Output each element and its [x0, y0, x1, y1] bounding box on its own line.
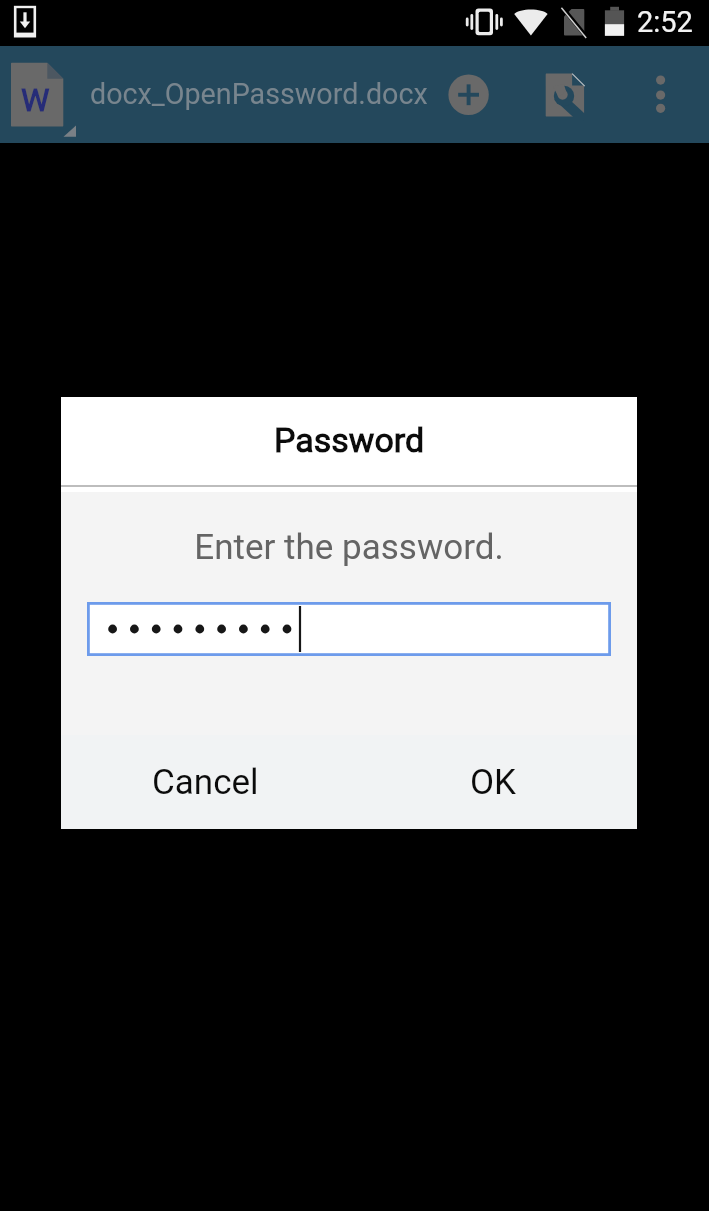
button[interactable]: Cancel — [61, 735, 349, 829]
button[interactable]: Add — [437, 46, 501, 143]
staticText: Cancel — [152, 762, 259, 803]
button[interactable]: Password field — [87, 602, 611, 656]
staticText: Password — [274, 420, 425, 460]
staticText: W — [21, 81, 50, 119]
staticText: 2:52 — [637, 5, 693, 39]
button[interactable]: Open document — [0, 46, 84, 143]
button[interactable]: OK — [349, 735, 637, 829]
staticText: OK — [470, 762, 517, 803]
staticText: docx_OpenPassword.docx — [90, 77, 428, 111]
button[interactable]: More options — [633, 46, 688, 143]
staticText: Enter the password. — [61, 527, 637, 568]
button[interactable]: Document tools — [534, 46, 596, 143]
